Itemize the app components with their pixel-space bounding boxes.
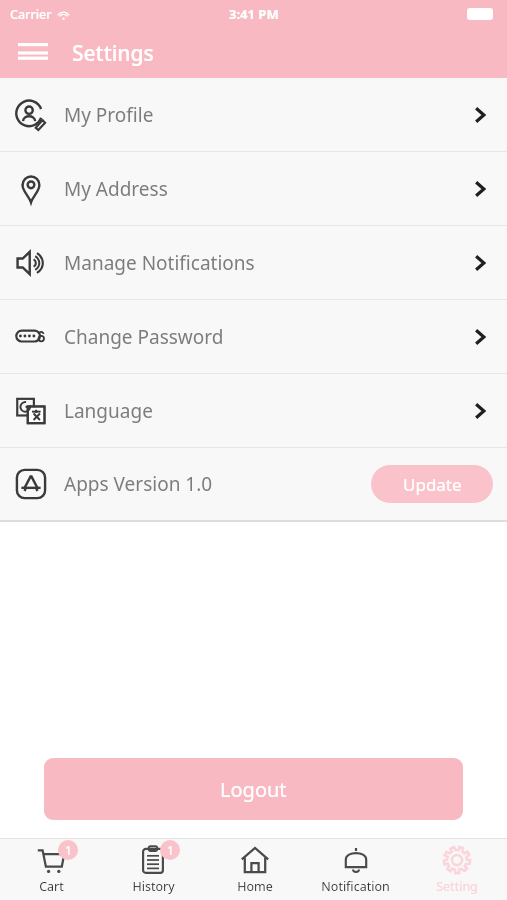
- button[interactable]: Setting: [406, 839, 507, 900]
- staticText: Apps Version 1.0: [64, 471, 213, 497]
- staticText: 1: [167, 842, 174, 858]
- staticText: Notification: [321, 878, 390, 895]
- button[interactable]: Change Password: [0, 300, 507, 373]
- button[interactable]: Logout: [44, 758, 463, 820]
- button[interactable]: 1: [0, 839, 102, 900]
- button[interactable]: Manage Notifications: [0, 226, 507, 299]
- staticText: 1: [65, 842, 72, 858]
- staticText: Manage Notifications: [64, 250, 255, 276]
- staticText: History: [132, 878, 175, 895]
- button[interactable]: Language: [0, 374, 507, 447]
- staticText: Change Password: [64, 324, 224, 350]
- staticText: 3:41 PM: [229, 5, 279, 23]
- staticText: Carrier: [10, 6, 52, 23]
- button[interactable]: 1: [102, 839, 204, 900]
- staticText: Update: [403, 473, 462, 496]
- staticText: Setting: [436, 878, 478, 895]
- staticText: Home: [237, 878, 273, 895]
- staticText: Logout: [220, 776, 287, 803]
- button[interactable]: Update: [371, 465, 493, 503]
- staticText: My Profile: [64, 102, 154, 128]
- staticText: Language: [64, 398, 153, 424]
- button[interactable]: Open menu: [14, 34, 52, 72]
- staticText: Settings: [72, 39, 154, 68]
- button[interactable]: Notification: [305, 839, 406, 900]
- staticText: Cart: [39, 878, 64, 895]
- button[interactable]: Home: [204, 839, 305, 900]
- staticText: My Address: [64, 176, 168, 202]
- button[interactable]: My Profile: [0, 78, 507, 151]
- button[interactable]: My Address: [0, 152, 507, 225]
